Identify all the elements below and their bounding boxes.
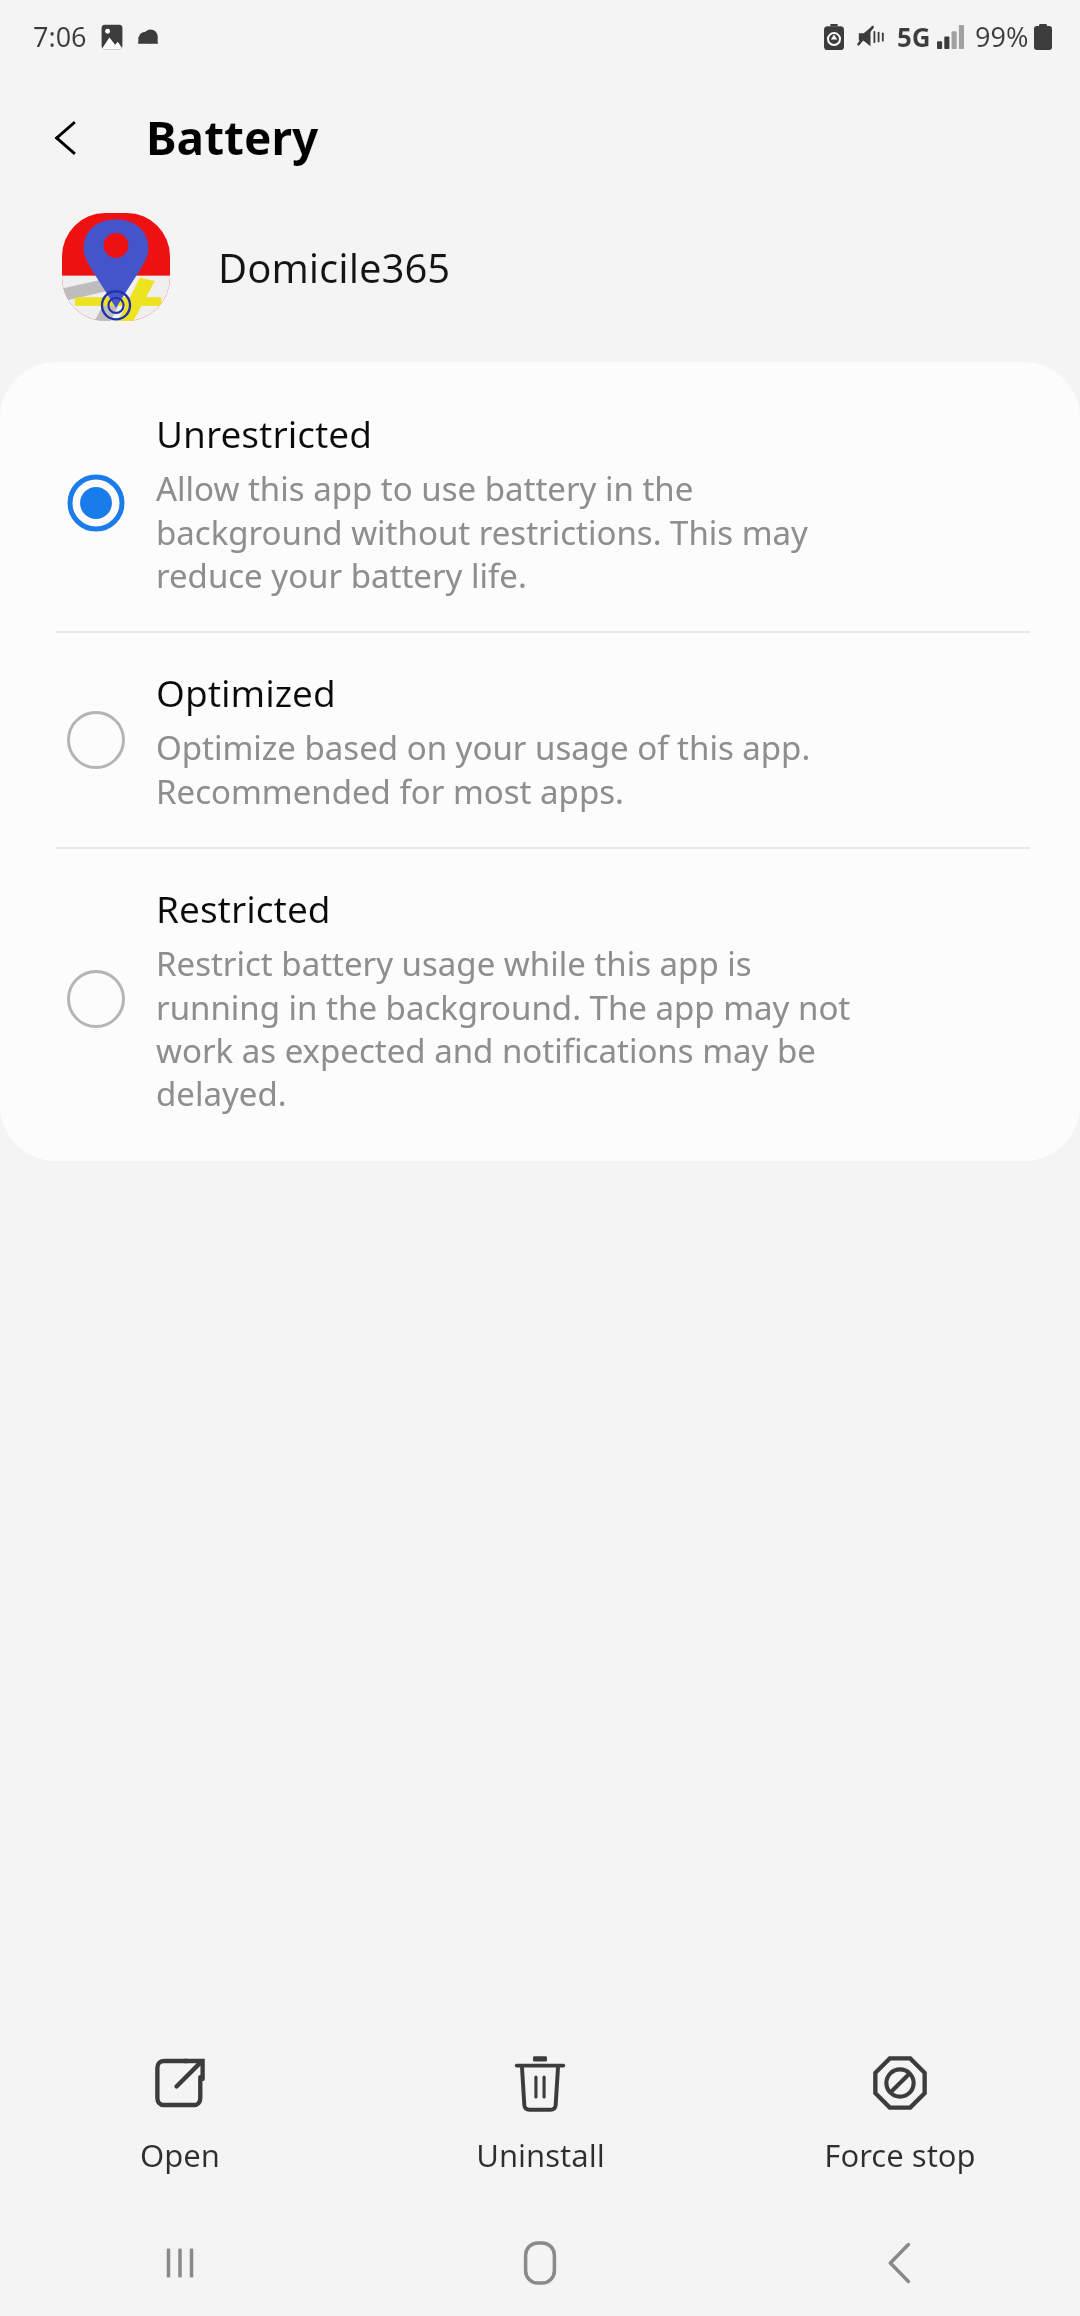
staticText: Restricted	[156, 883, 331, 933]
staticText: Optimize based on your usage of this app…	[156, 725, 811, 813]
button[interactable]: Open	[0, 2020, 360, 2210]
staticText: Domicile365	[218, 240, 451, 294]
staticText: Restrict battery usage while this app is…	[156, 941, 851, 1115]
staticText: Optimized	[156, 667, 336, 717]
button[interactable]: Uninstall	[360, 2020, 720, 2210]
staticText: Unrestricted	[156, 408, 372, 458]
staticText: Open	[140, 2134, 220, 2176]
staticText: 5G	[897, 19, 931, 54]
button[interactable]: Restricted	[0, 849, 1080, 1161]
staticText: Force stop	[824, 2134, 976, 2176]
button[interactable]: Recents	[0, 2210, 360, 2316]
button[interactable]: Optimized	[0, 633, 1080, 847]
staticText: Uninstall	[476, 2134, 605, 2176]
staticText: Battery	[146, 106, 319, 169]
staticText: 7:06	[33, 18, 87, 55]
button[interactable]: Back	[38, 109, 96, 167]
button[interactable]: Unrestricted	[0, 362, 1080, 631]
button[interactable]: Home	[360, 2210, 720, 2316]
button[interactable]: Force stop	[720, 2020, 1080, 2210]
staticText: 99%	[975, 18, 1029, 55]
button[interactable]: Back	[720, 2210, 1080, 2316]
staticText: Allow this app to use battery in the bac…	[156, 466, 808, 597]
